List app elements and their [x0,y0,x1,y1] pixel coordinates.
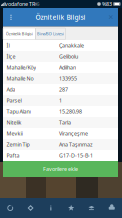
staticText: 1 [59,97,62,104]
staticText: G17-D-15-B-1 [59,152,93,159]
staticText: vodafone TR [5,0,35,8]
staticText: Bina/BD Listesi [37,31,64,36]
button[interactable]: Close [104,8,118,26]
staticText: Öznitelik Bilgisi [6,31,33,36]
staticText: Favorilere ekle [43,165,78,173]
staticText: Mevkii [6,130,22,137]
button[interactable]: Refresh [0,198,20,218]
staticText: Öznitelik Bilgisi [35,13,85,22]
staticText: Gelibolu [59,53,78,60]
staticText: %83 [102,0,112,8]
staticText: Parsel [6,97,21,104]
staticText: Pafta [6,152,19,159]
button[interactable]: Favourites [61,198,81,218]
button[interactable]: Öznitelik Bilgisi [3,28,35,39]
staticText: Ana Taşınmaz [59,141,93,148]
staticText: Mahalle/Köy [6,64,36,71]
staticText: Tarla [59,119,71,126]
staticText: ✕ [108,13,114,21]
button[interactable]: Favorilere ekle [3,161,118,177]
button[interactable]: Menu [3,8,19,26]
staticText: 4G [34,1,39,7]
staticText: 287 [59,86,68,93]
button[interactable]: Bina/BD Listesi [35,28,65,39]
staticText: Zemin Tip [6,141,29,148]
staticText: Mahalle No [6,75,33,82]
staticText: İlçe [6,53,15,60]
staticText: 15.280,98 [59,108,82,115]
button[interactable]: Info [41,198,61,218]
staticText: Çanakkale [59,42,84,49]
staticText: Tapu Alanı [6,108,30,115]
button[interactable]: Locate [20,198,41,218]
button[interactable]: Layers [81,198,102,218]
staticText: 133955 [59,75,77,82]
staticText: İl [6,42,9,49]
staticText: Nitelik [6,119,21,126]
button[interactable]: Download [102,198,122,218]
staticText: Virançeşme [59,130,88,137]
staticText: Adilhan [59,64,76,71]
staticText: Ada [6,86,15,93]
